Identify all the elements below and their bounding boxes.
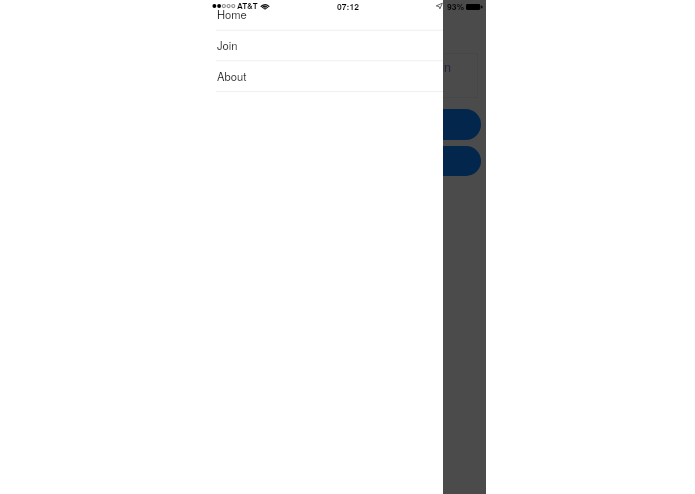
other: Battery 93 percent	[466, 4, 483, 10]
staticText: 07:12	[332, 0, 364, 12]
button[interactable]	[366, 146, 481, 176]
staticText: 93%	[447, 0, 465, 12]
staticText: Join	[217, 37, 238, 53]
staticText: About	[217, 68, 247, 84]
button[interactable]: Home	[216, 0, 443, 30]
button[interactable]: About	[216, 61, 443, 92]
staticText: AT&T	[237, 0, 258, 11]
button[interactable]: Join	[216, 30, 443, 61]
button[interactable]	[366, 109, 481, 140]
other: Location	[436, 3, 443, 9]
other: Wi-Fi	[260, 2, 270, 10]
other: Signal strength	[213, 3, 235, 9]
staticText: Home	[217, 6, 247, 22]
staticText: Join	[428, 58, 452, 76]
